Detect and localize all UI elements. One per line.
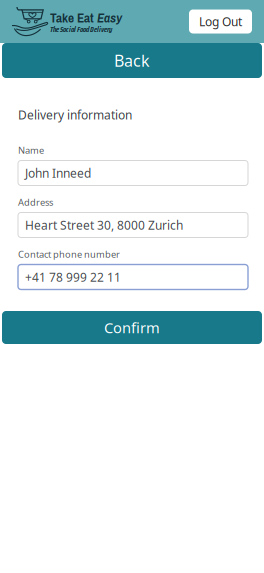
button[interactable]: Log Out [189,9,252,33]
staticText: Name [18,144,44,156]
staticText: Address [18,196,53,208]
staticText: Take Eat Easy [50,9,122,26]
staticText: +41 78 999 22 11 [25,269,121,285]
staticText: Back [114,50,150,71]
staticText: Delivery information [18,107,132,123]
staticText: Heart Street 30, 8000 Zurich [25,217,183,233]
staticText: The Social Food Delivery [50,23,112,36]
staticText: Log Out [199,13,242,29]
staticText: Confirm [104,318,160,337]
button[interactable]: Back [2,43,262,78]
staticText: John Inneed [25,165,91,181]
staticText: Contact phone number [18,248,120,260]
button[interactable]: Confirm [2,311,262,344]
